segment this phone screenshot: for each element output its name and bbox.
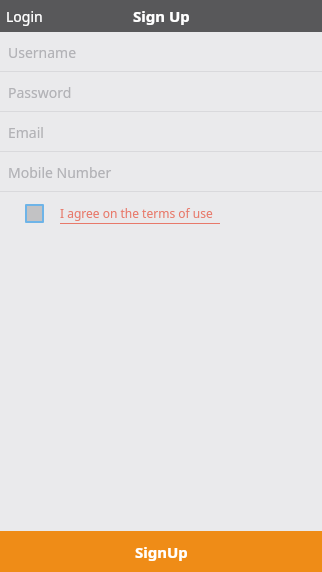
staticText: Username [8,43,77,62]
staticText: Password [8,83,72,102]
staticText: I agree on the terms of use [60,205,213,221]
staticText: Login [6,7,43,26]
button[interactable]: SignUp [0,531,322,572]
staticText: SignUp [135,542,188,562]
button[interactable]: I agree on the terms of use [60,205,220,222]
button[interactable]: Username [0,32,322,72]
button[interactable]: Login [0,0,53,32]
staticText: Sign Up [133,6,190,26]
button[interactable]: Email [0,112,322,152]
staticText: Mobile Number [8,163,112,182]
button[interactable]: Mobile Number [0,152,322,192]
button[interactable]: Password [0,72,322,112]
staticText: Email [8,123,44,142]
